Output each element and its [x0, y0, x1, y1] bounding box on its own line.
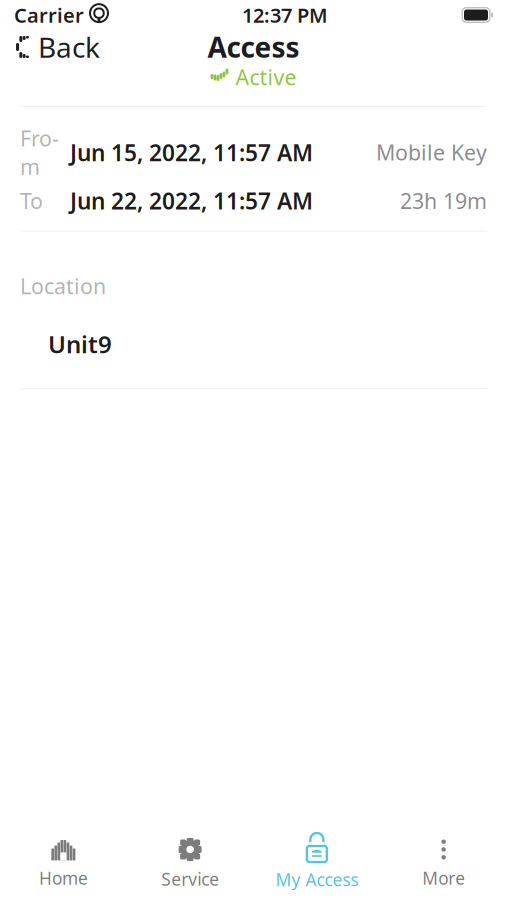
button[interactable]: Back	[0, 23, 116, 71]
button[interactable]: More	[380, 830, 507, 897]
staticText: Jun 15, 2022, 11:57 AM	[70, 137, 313, 167]
staticText: Access	[207, 28, 299, 66]
staticText: 23h 19m	[400, 186, 487, 215]
button[interactable]: My Access	[253, 829, 380, 899]
staticText: Carrier	[14, 2, 84, 28]
staticText: Service	[161, 867, 219, 890]
staticText: Active	[235, 63, 296, 91]
staticText: More	[422, 866, 465, 889]
staticText: From	[20, 124, 59, 181]
button[interactable]: Home	[0, 830, 127, 897]
staticText: Mobile Key	[376, 138, 487, 166]
staticText: My Access	[275, 868, 358, 891]
staticText: Home	[39, 866, 88, 889]
button[interactable]: Service	[127, 829, 254, 898]
staticText: Unit9	[48, 328, 112, 360]
staticText: Back	[38, 28, 100, 66]
staticText: Jun 22, 2022, 11:57 AM	[70, 186, 313, 216]
staticText: Location	[20, 272, 106, 300]
staticText: 12:37 PM	[242, 2, 328, 28]
staticText: To	[20, 186, 43, 215]
